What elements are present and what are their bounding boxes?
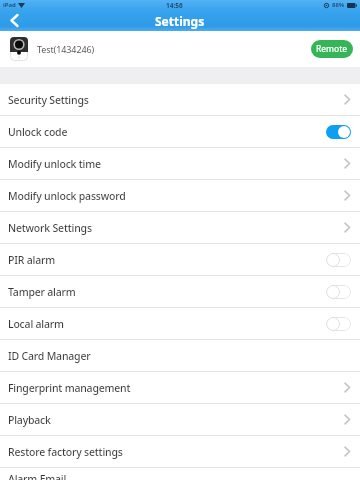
staticText: Playback [8,413,51,427]
staticText: Alarm Email [8,472,67,480]
button[interactable]: Test(1434246) [0,31,360,67]
button[interactable]: Fingerprint management [0,372,360,403]
staticText: ID Card Manager [8,349,91,363]
button[interactable]: Network Settings [0,212,360,243]
button[interactable]: Tamper alarm [0,276,360,307]
button[interactable]: Modify unlock password [0,180,360,211]
staticText: Modify unlock time [8,157,101,171]
button[interactable]: Modify unlock time [0,148,360,179]
staticText: PIR alarm [8,253,55,267]
staticText: Unlock code [8,125,68,139]
staticText: Remote [316,43,348,55]
staticText: Local alarm [8,317,64,331]
staticText: 88% [332,1,345,9]
button[interactable] [326,285,351,299]
staticText: iPad [3,1,16,9]
button[interactable]: Security Settings [0,84,360,115]
button[interactable]: Restore factory settings [0,436,360,467]
staticText: Test(1434246) [37,43,95,55]
staticText: Tamper alarm [8,285,76,299]
button[interactable] [326,253,351,267]
button[interactable]: Playback [0,404,360,435]
staticText: Restore factory settings [8,445,123,459]
button[interactable] [326,125,351,139]
button[interactable]: ID Card Manager [0,340,360,371]
staticText: Settings [155,13,205,29]
staticText: 14:56 [166,1,183,10]
button[interactable]: PIR alarm [0,244,360,275]
button[interactable]: Unlock code [0,116,360,147]
button[interactable] [2,10,26,31]
button[interactable]: Alarm Email [0,468,360,480]
staticText: Security Settings [8,93,89,107]
button[interactable]: Local alarm [0,308,360,339]
button[interactable]: Remote [311,40,353,58]
button[interactable] [326,317,351,331]
staticText: Network Settings [8,221,92,235]
staticText: Fingerprint management [8,381,131,395]
staticText: Modify unlock password [8,189,126,203]
